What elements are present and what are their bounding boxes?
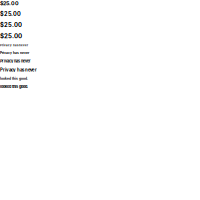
staticText: $25.00 bbox=[0, 0, 19, 6]
staticText: $25.00 bbox=[0, 21, 22, 28]
staticText: Privacy has never bbox=[0, 44, 28, 47]
staticText: Privacy has never bbox=[0, 51, 29, 55]
staticText: Privacy has never bbox=[0, 59, 31, 63]
staticText: looked this good. bbox=[0, 76, 28, 80]
staticText: $25.00 bbox=[0, 10, 21, 17]
staticText: $25.00 bbox=[0, 32, 22, 40]
staticText: looked this good. bbox=[0, 84, 28, 89]
staticText: Privacy has never bbox=[0, 67, 37, 73]
